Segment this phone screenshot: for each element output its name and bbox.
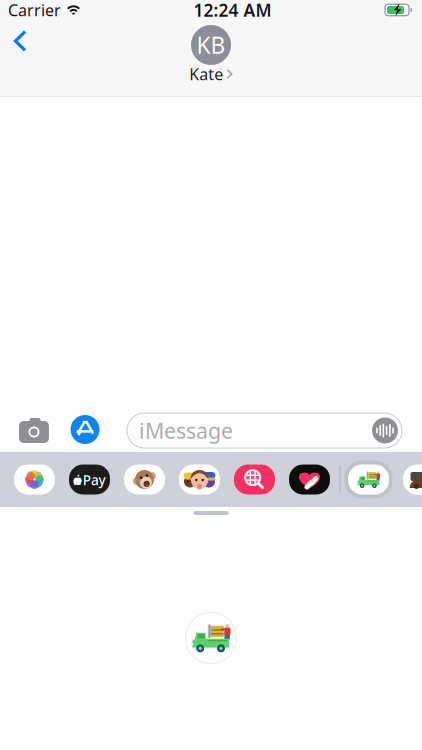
button[interactable]: Memoji Stickers [179, 464, 220, 494]
button[interactable]: Images [234, 464, 275, 494]
staticText: Pay [82, 470, 107, 490]
button[interactable]: More Stickers [403, 464, 422, 494]
staticText: KB [196, 30, 225, 60]
button[interactable]: Memoji [124, 464, 165, 494]
button[interactable]: Truck sticker [179, 606, 243, 670]
button[interactable]: Apple Pay [69, 464, 110, 494]
button[interactable]: iMessage [127, 413, 402, 448]
button[interactable]: Digital Touch [289, 464, 330, 494]
button[interactable]: Photos [14, 464, 55, 494]
button[interactable]: Apps [70, 415, 99, 444]
button[interactable]: Back [5, 21, 35, 61]
button[interactable]: KB [166, 25, 256, 81]
button[interactable]: Truck Stickers [344, 460, 392, 498]
button[interactable]: Camera [17, 415, 51, 445]
staticText: 12:24 AM [193, 0, 271, 21]
staticText: Carrier [8, 0, 61, 21]
staticText: iMessage [139, 416, 233, 445]
staticText: Kate [189, 63, 223, 85]
